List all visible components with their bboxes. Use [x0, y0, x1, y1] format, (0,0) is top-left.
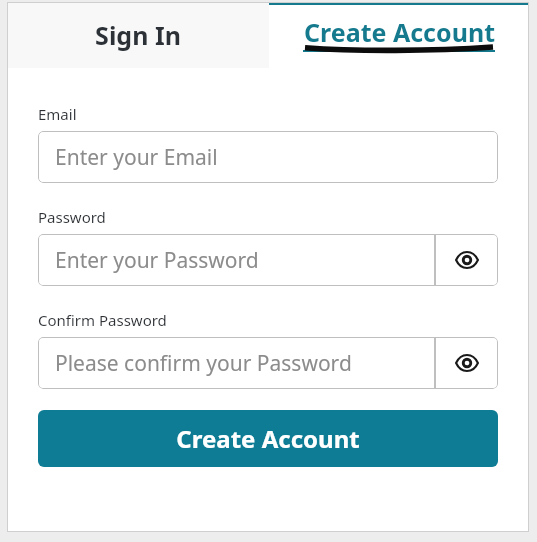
- button[interactable]: Show password: [435, 234, 498, 286]
- button[interactable]: Enter your Email: [38, 131, 498, 183]
- staticText: Password: [38, 207, 106, 227]
- staticText: Create Account: [176, 422, 360, 455]
- staticText: Confirm Password: [38, 310, 167, 330]
- button[interactable]: Show password: [435, 337, 498, 389]
- staticText: Please confirm your Password: [55, 349, 352, 378]
- staticText: Enter your Email: [55, 143, 218, 172]
- staticText: Create Account: [304, 15, 495, 49]
- staticText: Enter your Password: [55, 246, 259, 275]
- button[interactable]: Sign In: [7, 2, 269, 68]
- button[interactable]: Enter your Password: [38, 234, 435, 286]
- button[interactable]: Create Account: [269, 2, 529, 68]
- staticText: Email: [38, 104, 77, 124]
- button[interactable]: Create Account: [38, 410, 498, 467]
- staticText: Sign In: [95, 18, 181, 52]
- button[interactable]: Please confirm your Password: [38, 337, 435, 389]
